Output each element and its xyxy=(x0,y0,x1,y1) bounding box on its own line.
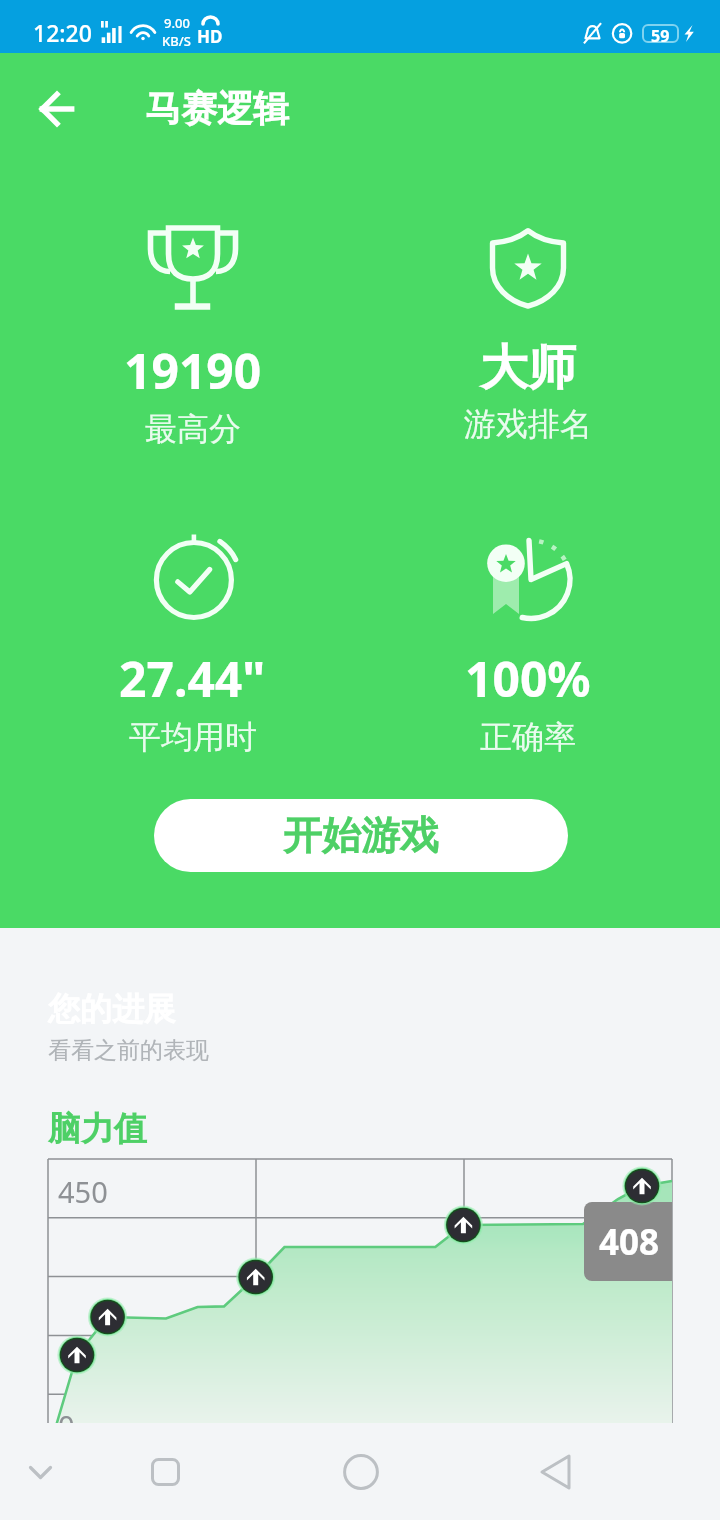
staticText: HD xyxy=(197,25,223,48)
staticText: 408 xyxy=(599,1218,660,1266)
staticText: 看看之前的表现 xyxy=(48,1036,209,1065)
staticText: 12:20 xyxy=(33,17,92,48)
button[interactable]: 开始游戏 xyxy=(154,799,568,872)
staticText: 平均用时 xyxy=(129,717,257,757)
button[interactable]: Back xyxy=(523,1440,587,1504)
staticText: KB/S xyxy=(162,32,191,50)
staticText: 27.44" xyxy=(119,646,266,711)
staticText: 马赛逻辑 xyxy=(145,86,289,131)
staticText: 大师 xyxy=(480,338,576,398)
staticText: 450 xyxy=(58,1172,108,1211)
staticText: 游戏排名 xyxy=(464,404,592,444)
staticText: 0 xyxy=(58,1406,75,1445)
staticText: 9.00 xyxy=(164,14,190,32)
staticText: 最高分 xyxy=(145,409,241,449)
staticText: 开始游戏 xyxy=(283,811,439,860)
button[interactable]: Home xyxy=(329,1440,393,1504)
button[interactable]: Hide keyboard xyxy=(8,1440,72,1504)
staticText: 正确率 xyxy=(480,717,576,757)
button[interactable]: Recents xyxy=(133,1440,197,1504)
button[interactable]: Back xyxy=(24,76,89,141)
staticText: 脑力值 xyxy=(48,1108,147,1150)
staticText: 19190 xyxy=(124,338,262,403)
staticText: 59 xyxy=(651,25,670,42)
staticText: 您的进展 xyxy=(48,989,176,1029)
staticText: 100% xyxy=(465,646,591,711)
